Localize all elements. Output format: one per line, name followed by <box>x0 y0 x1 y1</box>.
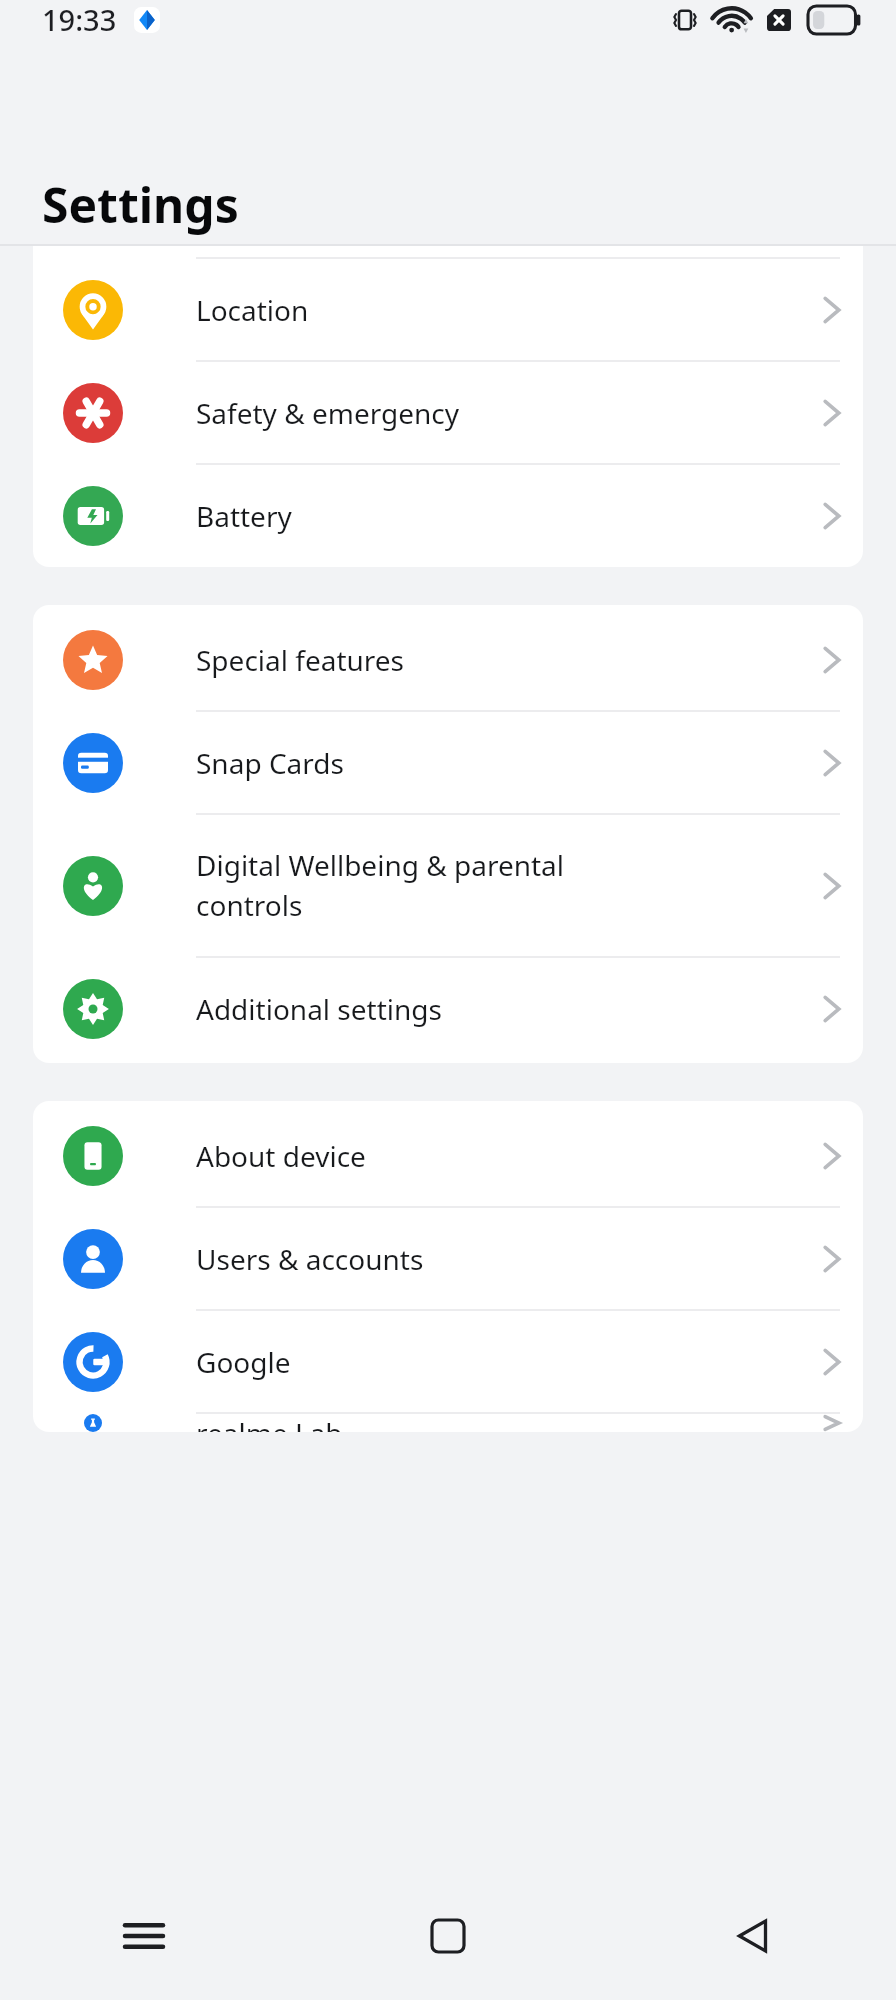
button[interactable]: Digital Wellbeing & parental controls <box>33 815 863 956</box>
staticText: Snap Cards <box>196 744 344 782</box>
staticText: Settings <box>42 172 239 237</box>
staticText: Digital Wellbeing & parental controls <box>196 846 565 925</box>
button[interactable]: realme Lab <box>33 1414 863 1432</box>
button[interactable]: Snap Cards <box>33 712 863 813</box>
button[interactable]: Battery <box>33 465 863 566</box>
staticText: Users & accounts <box>196 1240 424 1278</box>
button[interactable]: Users & accounts <box>33 1208 863 1309</box>
button[interactable]: Google <box>33 1311 863 1412</box>
button[interactable]: About device <box>33 1105 863 1206</box>
staticText: Special features <box>196 641 405 679</box>
staticText: Battery <box>196 497 292 535</box>
staticText: realme Lab <box>196 1414 343 1432</box>
button[interactable]: Location <box>33 259 863 360</box>
button[interactable]: Home <box>400 1888 496 1984</box>
staticText: Additional settings <box>196 990 442 1028</box>
staticText: 19:33 <box>42 0 117 39</box>
staticText: Location <box>196 291 309 329</box>
button[interactable]: Special features <box>33 609 863 710</box>
staticText: Safety & emergency <box>196 394 460 432</box>
staticText: About device <box>196 1137 366 1175</box>
button[interactable]: Back <box>704 1888 800 1984</box>
staticText: Google <box>196 1343 291 1381</box>
button[interactable]: Recent apps <box>96 1888 192 1984</box>
button[interactable]: Additional settings <box>33 958 863 1059</box>
button[interactable]: Safety & emergency <box>33 362 863 463</box>
